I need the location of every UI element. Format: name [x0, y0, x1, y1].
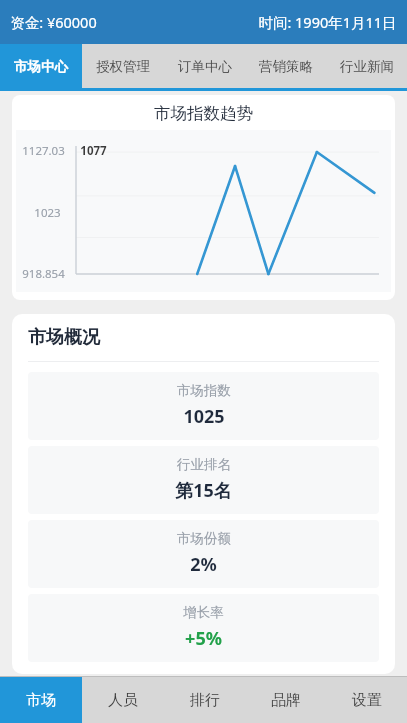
staticText: 市场概况 [28, 326, 100, 349]
button[interactable]: 市场中心 [0, 44, 82, 88]
button[interactable]: 增长率 [28, 594, 379, 662]
staticText: 第15名 [175, 478, 232, 503]
staticText: 行业排名 [177, 456, 231, 473]
staticText: 1023 [34, 205, 61, 221]
staticText: 时间: 1990年1月11日 [258, 12, 397, 32]
button[interactable]: 订单中心 [164, 44, 245, 88]
button[interactable]: 授权管理 [82, 44, 164, 88]
staticText: +5% [185, 626, 222, 651]
button[interactable]: 品牌 [245, 677, 326, 723]
button[interactable]: 市场份额 [28, 520, 379, 588]
button[interactable]: 营销策略 [245, 44, 326, 88]
button[interactable]: 市场指数 [28, 372, 379, 440]
staticText: 增长率 [183, 604, 224, 621]
staticText: 市场份额 [177, 530, 231, 547]
button[interactable]: 行业排名 [28, 446, 379, 514]
staticText: 行业新闻 [340, 58, 394, 75]
staticText: 市场 [26, 691, 56, 710]
staticText: 设置 [352, 691, 382, 710]
staticText: 918.854 [22, 266, 65, 282]
staticText: 1077 [80, 143, 107, 159]
staticText: 1025 [183, 404, 225, 429]
staticText: 资金: ¥60000 [10, 12, 97, 32]
staticText: 排行 [190, 691, 220, 710]
staticText: 营销策略 [259, 58, 313, 75]
button[interactable]: 排行 [164, 677, 245, 723]
staticText: 品牌 [271, 691, 301, 710]
staticText: 市场指数 [177, 382, 231, 399]
staticText: 1127.03 [22, 143, 65, 159]
button[interactable]: 行业新闻 [326, 44, 407, 88]
button[interactable]: 市场 [0, 677, 82, 723]
staticText: 2% [190, 552, 217, 577]
button[interactable]: 人员 [82, 677, 164, 723]
staticText: 订单中心 [178, 58, 232, 75]
staticText: 授权管理 [96, 58, 150, 75]
button[interactable]: 设置 [326, 677, 407, 723]
staticText: 市场指数趋势 [154, 103, 253, 124]
staticText: 人员 [108, 691, 138, 710]
staticText: 市场中心 [14, 58, 68, 75]
